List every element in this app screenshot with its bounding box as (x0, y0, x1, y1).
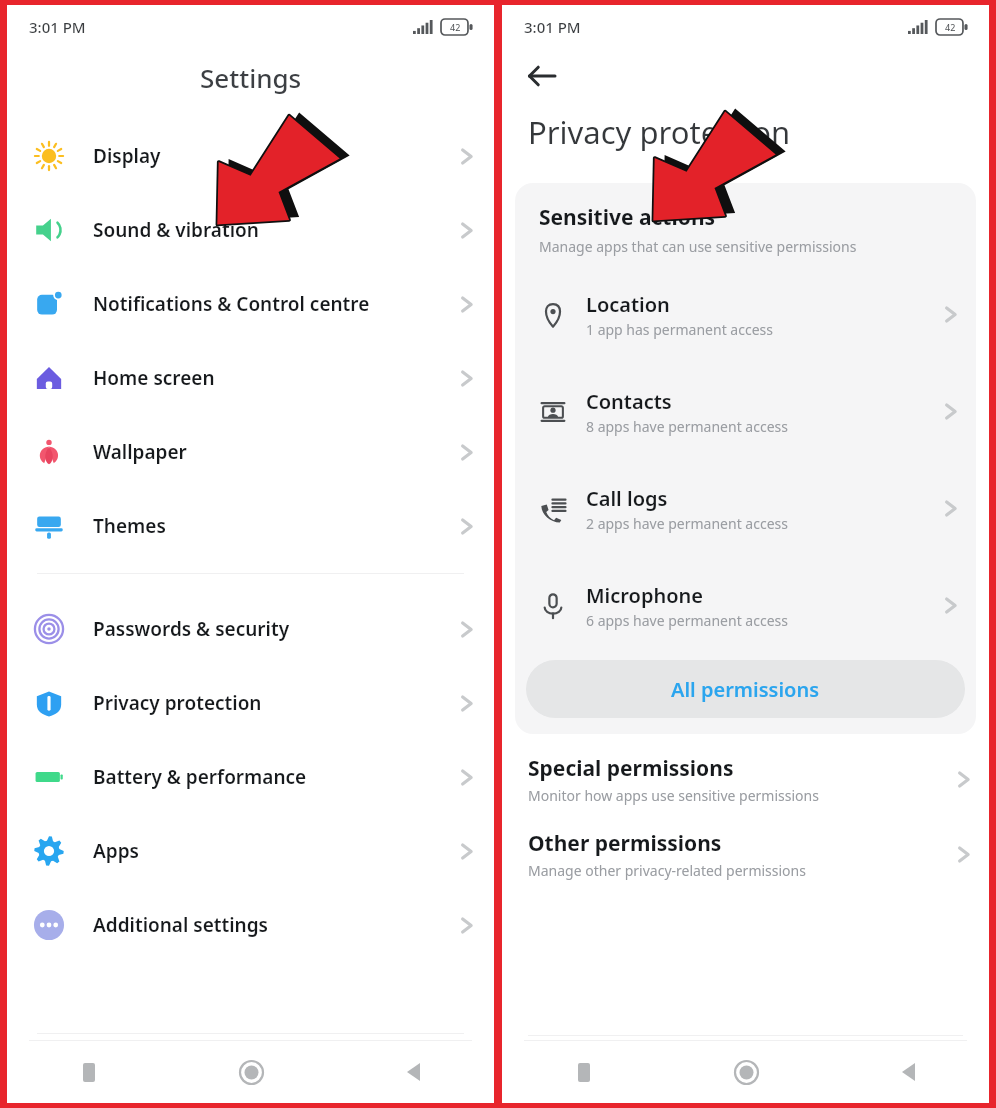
staticText: Themes (93, 513, 166, 539)
staticText: All permissions (671, 676, 820, 703)
staticText: Contacts (586, 388, 672, 415)
button[interactable]: Display (7, 119, 494, 193)
button[interactable]: Passwords & security (7, 592, 494, 666)
button[interactable]: Special permissions (502, 754, 989, 805)
staticText: Wallpaper (93, 439, 187, 465)
button[interactable]: Microphone (515, 557, 976, 654)
button[interactable]: Recents (502, 1041, 665, 1103)
button[interactable]: Home (665, 1041, 827, 1103)
staticText: Sound & vibration (93, 217, 259, 243)
button[interactable]: All permissions (526, 660, 965, 718)
staticText: 42 (450, 21, 461, 33)
staticText: Location (586, 291, 670, 318)
button[interactable]: Notifications & Control centre (7, 267, 494, 341)
staticText: Settings (200, 60, 302, 95)
staticText: Special permissions (528, 754, 734, 783)
staticText: 3:01 PM (524, 17, 581, 37)
staticText: 8 apps have permanent access (586, 417, 788, 436)
button[interactable]: Location (515, 266, 976, 363)
staticText: Passwords & security (93, 616, 290, 642)
button[interactable]: Call logs (515, 460, 976, 557)
button[interactable]: Themes (7, 489, 494, 563)
staticText: 2 apps have permanent access (586, 514, 788, 533)
button[interactable]: Home screen (7, 341, 494, 415)
staticText: Home screen (93, 365, 215, 391)
staticText: Other permissions (528, 829, 722, 858)
staticText: Display (93, 143, 161, 169)
button[interactable]: Other permissions (502, 829, 989, 880)
staticText: Apps (93, 838, 139, 864)
button[interactable]: Additional settings (7, 888, 494, 962)
button[interactable]: Recents (7, 1041, 170, 1103)
staticText: Sensitive actions (539, 203, 716, 232)
staticText: Notifications & Control centre (93, 291, 370, 317)
button[interactable]: Battery & performance (7, 740, 494, 814)
button[interactable]: Sound & vibration (7, 193, 494, 267)
staticText: Microphone (586, 582, 703, 609)
staticText: Additional settings (93, 912, 268, 938)
staticText: 1 app has permanent access (586, 320, 773, 339)
button[interactable]: Wallpaper (7, 415, 494, 489)
staticText: Monitor how apps use sensitive permissio… (528, 786, 819, 805)
staticText: Call logs (586, 485, 668, 512)
staticText: Manage other privacy-related permissions (528, 861, 806, 880)
staticText: 6 apps have permanent access (586, 611, 788, 630)
staticText: Battery & performance (93, 764, 307, 790)
button[interactable]: Contacts (515, 363, 976, 460)
staticText: Privacy protection (528, 111, 791, 153)
button[interactable]: Back (332, 1041, 494, 1103)
button[interactable]: Apps (7, 814, 494, 888)
staticText: 42 (945, 21, 956, 33)
button[interactable]: Back (514, 49, 568, 103)
button[interactable]: Home (170, 1041, 332, 1103)
button[interactable]: Privacy protection (7, 666, 494, 740)
button[interactable]: Back (827, 1041, 989, 1103)
staticText: Manage apps that can use sensitive permi… (539, 237, 857, 256)
staticText: Privacy protection (93, 690, 262, 716)
staticText: 3:01 PM (29, 17, 86, 37)
